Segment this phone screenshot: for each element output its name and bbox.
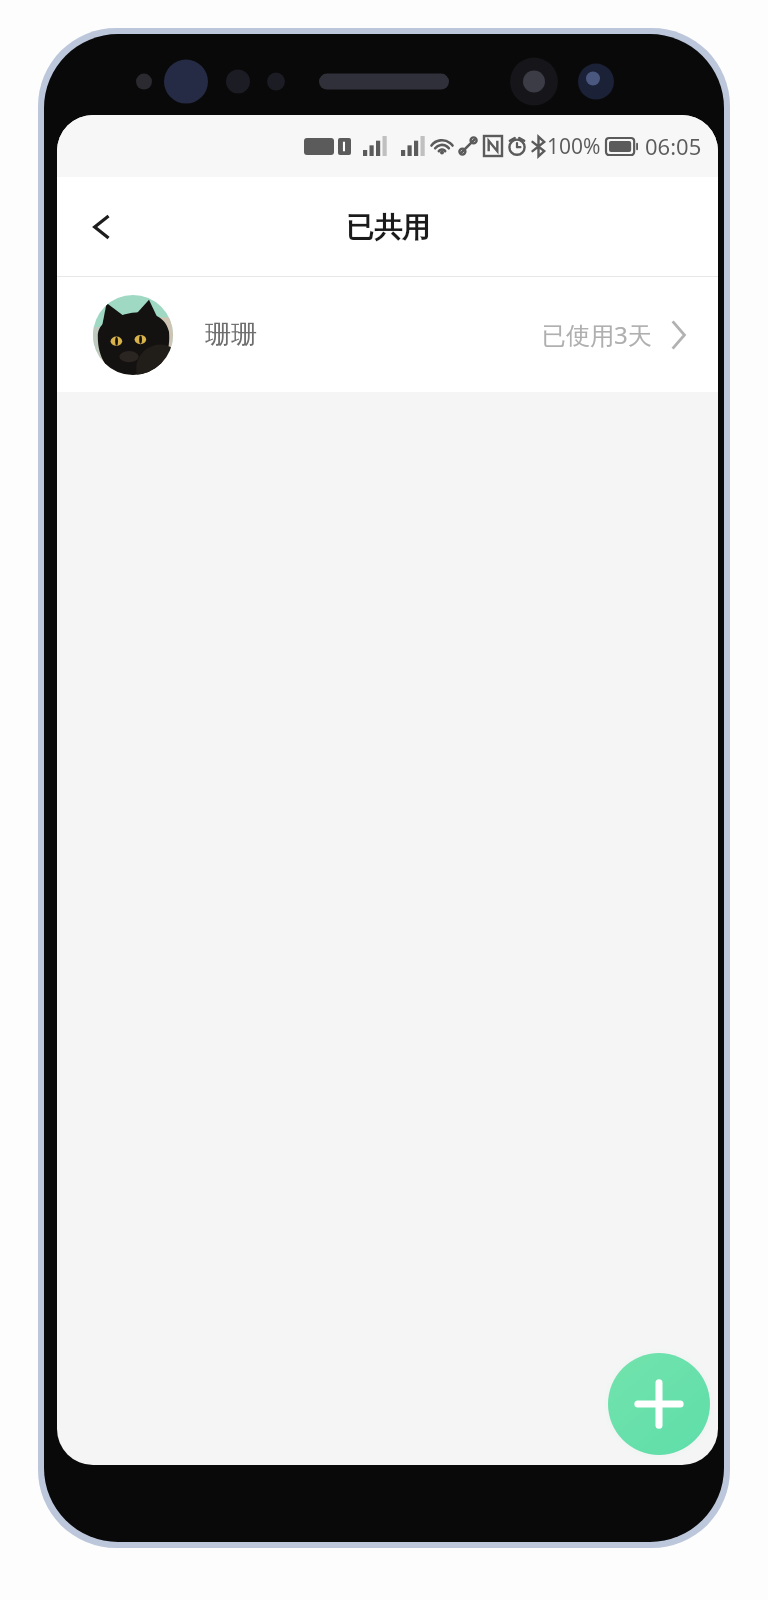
staticText: 06:05 xyxy=(645,131,702,161)
button[interactable]: Add xyxy=(608,1353,710,1455)
staticText: 已共用 xyxy=(346,210,430,245)
staticText: 珊珊 xyxy=(205,318,257,351)
staticText: 100% xyxy=(547,132,601,161)
button[interactable]: Back xyxy=(73,199,129,255)
staticText: 已使用3天 xyxy=(542,318,652,351)
button[interactable]: 珊珊 xyxy=(57,277,718,392)
